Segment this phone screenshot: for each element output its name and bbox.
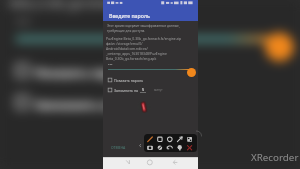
button[interactable]: Показать пароль	[16, 61, 205, 80]
staticText: Запомнить на	[35, 96, 117, 112]
staticText: минут	[154, 88, 163, 92]
staticText: Этот архив содержит зашифрованные данные…	[107, 24, 180, 33]
staticText: Показать пароль	[114, 78, 144, 83]
staticText: PuzEngine Beta_0.30b_go.foreach.fz/engin…	[9, 0, 249, 11]
staticText: PuzEngine Beta_0.30b_go.foreach.fz/engin…	[106, 36, 182, 61]
staticText: 5	[142, 87, 145, 92]
staticText: ОТМЕНА	[111, 145, 126, 150]
staticText: •••	[108, 62, 113, 67]
button[interactable]: ОТМЕНА	[109, 143, 128, 151]
staticText: Введите пароль	[109, 12, 150, 19]
other: Show password	[187, 68, 196, 77]
staticText: XRecorder	[251, 151, 299, 164]
button[interactable]: Показать пароль	[108, 77, 168, 83]
staticText: Запомнить на	[114, 88, 139, 93]
other: Show password	[265, 33, 294, 61]
button[interactable]: Запомнить на	[108, 87, 163, 93]
button[interactable]: Запомнить на	[16, 93, 193, 112]
staticText: Показать пароль	[35, 64, 136, 80]
